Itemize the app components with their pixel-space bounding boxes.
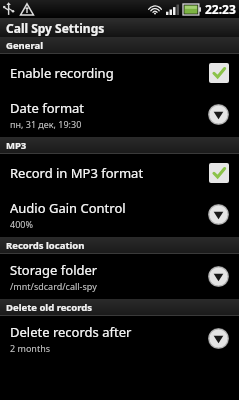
staticText: Storage folder: [10, 261, 98, 279]
button[interactable]: Audio Gain Control: [0, 192, 239, 237]
button[interactable]: Open options: [208, 266, 229, 287]
staticText: 400%: [10, 218, 33, 230]
staticText: 2 months: [10, 342, 51, 354]
staticText: Audio Gain Control: [10, 199, 126, 217]
button[interactable]: Date format: [0, 92, 239, 137]
button[interactable]: Record in MP3 format: [0, 154, 239, 192]
staticText: Records location: [6, 239, 85, 252]
staticText: Call Spy Settings: [6, 20, 105, 36]
staticText: MP3: [6, 139, 27, 152]
staticText: /mnt/sdcard/call-spy: [10, 280, 97, 292]
staticText: 22:23: [205, 1, 236, 17]
button[interactable]: Toggle: [209, 63, 229, 83]
button[interactable]: Open options: [208, 104, 229, 125]
button[interactable]: Storage folder: [0, 254, 239, 299]
staticText: Date format: [10, 99, 85, 117]
staticText: Delete old records: [6, 301, 93, 314]
button[interactable]: Delete records after: [0, 316, 239, 361]
staticText: Enable recording: [10, 64, 209, 82]
button[interactable]: Open options: [208, 328, 229, 349]
staticText: пн, 31 дек, 19:30: [10, 118, 82, 130]
button[interactable]: Enable recording: [0, 54, 239, 92]
button[interactable]: Open options: [208, 204, 229, 225]
staticText: Record in MP3 format: [10, 164, 209, 182]
staticText: General: [6, 39, 43, 52]
button[interactable]: Toggle: [209, 163, 229, 183]
staticText: Delete records after: [10, 323, 132, 341]
